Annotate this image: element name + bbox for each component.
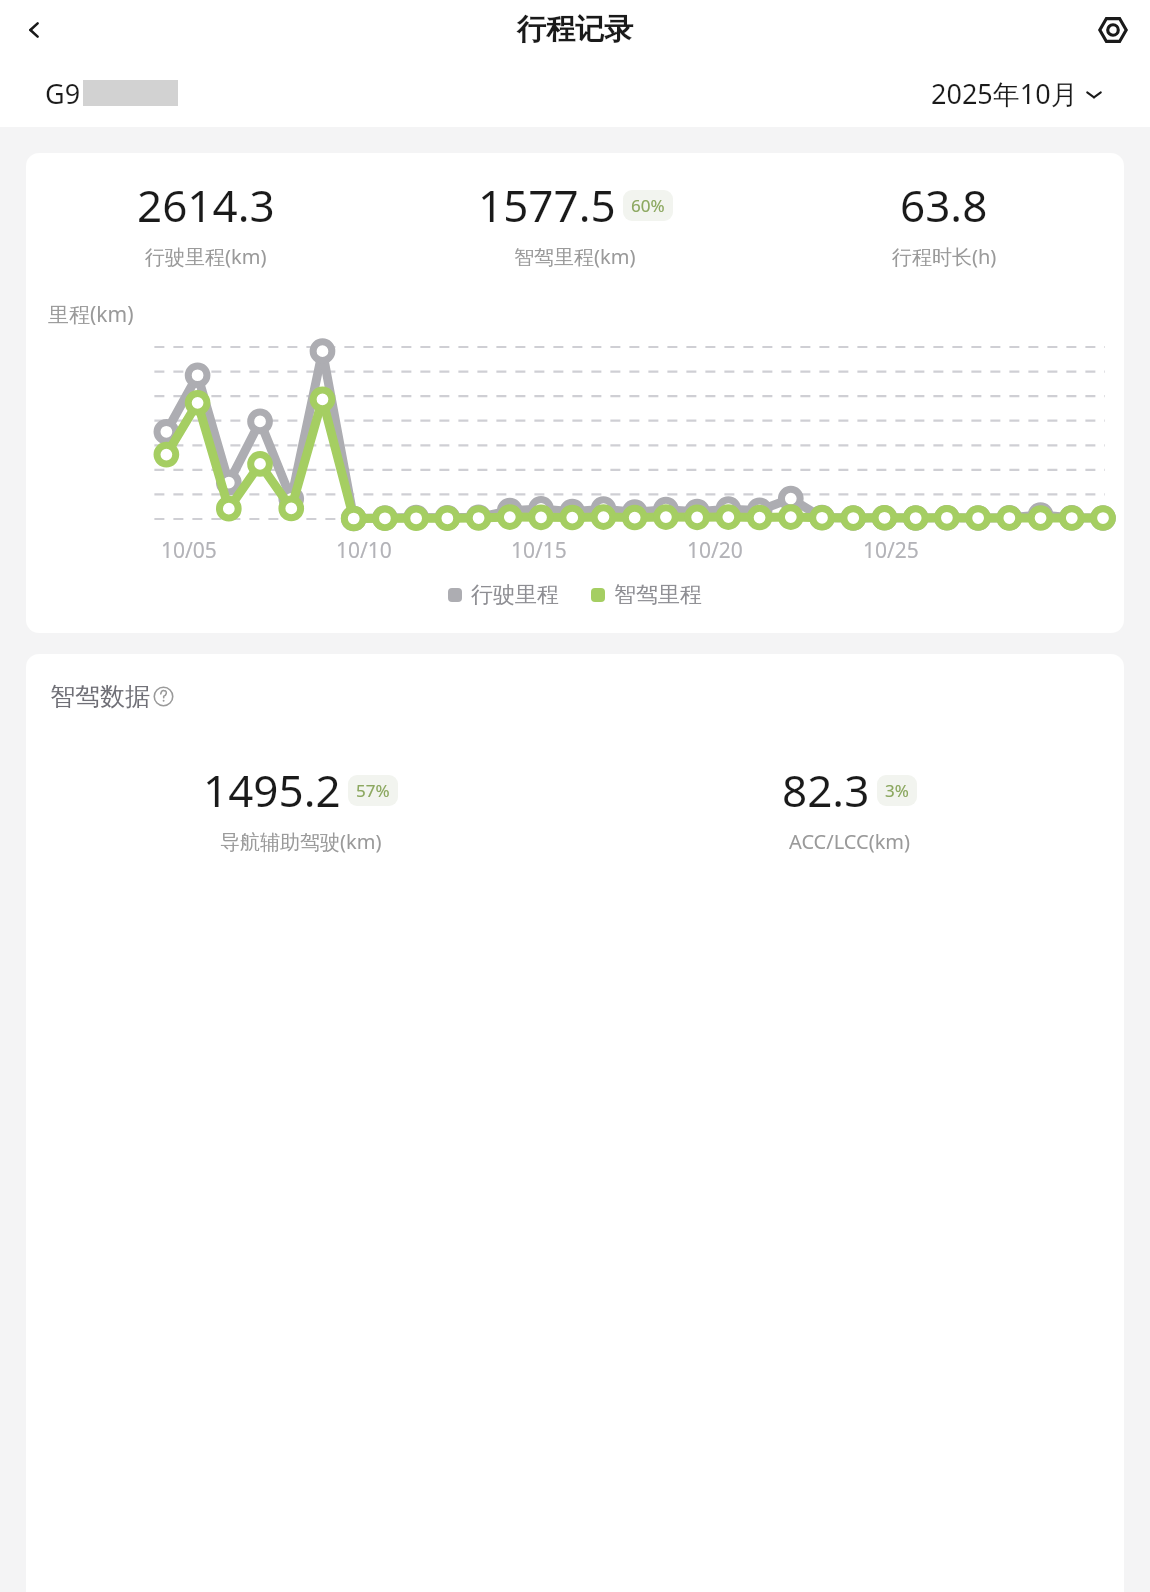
staticText: 10/20	[687, 536, 743, 565]
staticText: 智驾数据	[50, 681, 150, 712]
staticText: ACC/LCC(km)	[789, 828, 911, 855]
button[interactable]: Settings	[1092, 9, 1134, 51]
staticText: 行驶里程(km)	[145, 243, 267, 270]
staticText: 2025年10月	[931, 75, 1078, 112]
staticText: 1495.2	[203, 760, 341, 820]
staticText: 63.8	[900, 175, 988, 235]
staticText: 60%	[631, 194, 665, 217]
staticText: 智驾里程	[614, 581, 702, 609]
staticText: 82.3	[782, 760, 870, 820]
staticText: 1577.5	[478, 175, 616, 235]
button[interactable]: Back	[14, 9, 56, 51]
button[interactable]: 2025年10月	[931, 75, 1104, 112]
staticText: 行程时长(h)	[892, 243, 997, 270]
staticText: 10/10	[336, 536, 392, 565]
staticText: 导航辅助驾驶(km)	[220, 828, 382, 855]
staticText: 10/15	[511, 536, 567, 565]
staticText: G9	[45, 75, 81, 112]
staticText: 行驶里程	[471, 581, 559, 609]
staticText: 10/25	[863, 536, 919, 565]
staticText: 2614.3	[137, 175, 275, 235]
staticText: 里程(km)	[48, 300, 134, 329]
staticText: 57%	[356, 779, 390, 802]
staticText: 10/05	[161, 536, 217, 565]
staticText: 智驾里程(km)	[514, 243, 636, 270]
staticText: 行程记录	[517, 11, 633, 48]
staticText: 3%	[885, 779, 909, 802]
button[interactable]: 智驾数据	[50, 681, 174, 712]
